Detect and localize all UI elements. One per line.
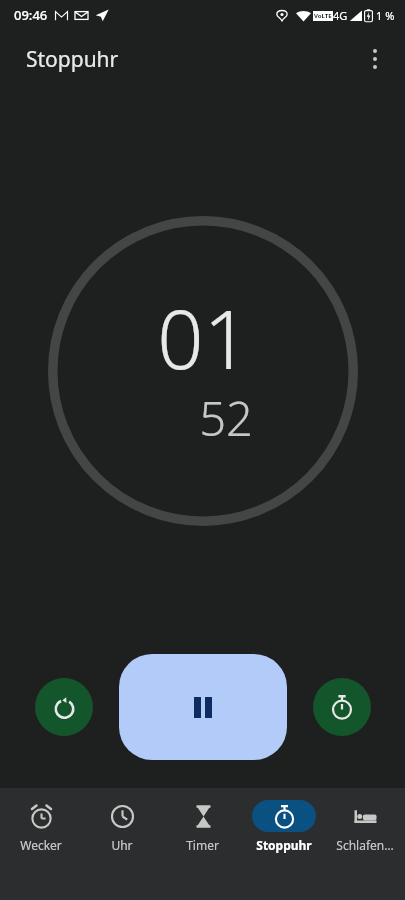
staticText: 09:46 xyxy=(14,6,48,24)
button[interactable]: Schlafen… xyxy=(324,798,405,855)
staticText: 1 % xyxy=(376,8,395,23)
button[interactable]: Stoppuhr xyxy=(243,798,324,855)
button[interactable]: Zurücksetzen xyxy=(35,678,93,736)
staticText: Timer xyxy=(186,837,219,853)
button[interactable]: Runde xyxy=(313,678,371,736)
staticText: Wecker xyxy=(20,837,62,853)
staticText: 01 xyxy=(157,282,250,392)
staticText: 52 xyxy=(199,386,253,450)
staticText: Uhr xyxy=(111,837,133,853)
button[interactable]: Timer xyxy=(162,798,243,855)
button[interactable]: Uhr xyxy=(81,798,162,855)
staticText: Stoppuhr xyxy=(26,45,119,74)
staticText: VoLTE xyxy=(314,12,332,20)
staticText: Stoppuhr xyxy=(256,837,312,853)
button[interactable]: Wecker xyxy=(0,798,81,855)
staticText: Schlafen… xyxy=(336,837,394,853)
button[interactable]: Weitere Optionen xyxy=(353,37,397,81)
button[interactable]: Pause xyxy=(119,654,287,760)
staticText: 4G xyxy=(333,8,348,23)
